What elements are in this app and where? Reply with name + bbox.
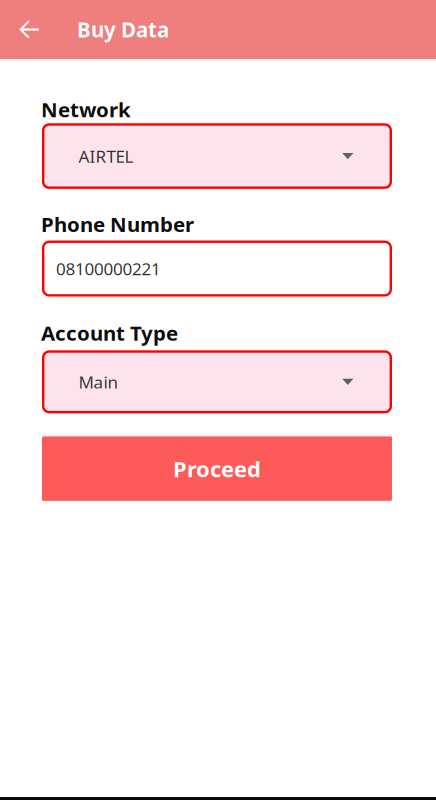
- staticText: Account Type: [41, 319, 178, 347]
- staticText: Network: [41, 95, 131, 123]
- staticText: Main: [79, 370, 119, 393]
- button[interactable]: Proceed: [42, 436, 392, 501]
- staticText: AIRTEL: [79, 144, 134, 168]
- button[interactable]: 08100000221: [42, 241, 392, 297]
- button[interactable]: Main: [42, 350, 392, 413]
- button[interactable]: AIRTEL: [42, 123, 392, 189]
- staticText: Buy Data: [77, 15, 169, 43]
- staticText: Proceed: [173, 454, 261, 484]
- button[interactable]: Back: [10, 9, 48, 49]
- staticText: 08100000221: [56, 257, 161, 280]
- staticText: Phone Number: [41, 210, 194, 238]
